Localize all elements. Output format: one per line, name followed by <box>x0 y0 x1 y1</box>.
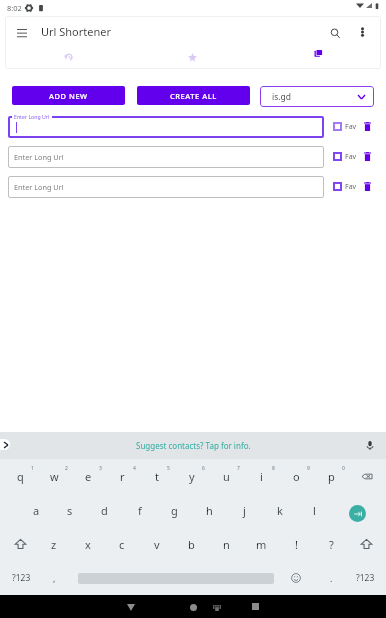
staticText: ! <box>295 537 298 552</box>
button[interactable]: Copy <box>301 42 335 65</box>
staticText: x <box>85 537 91 552</box>
staticText: z <box>51 537 57 552</box>
staticText: Fav <box>345 182 357 192</box>
button[interactable]: n <box>209 527 244 561</box>
button[interactable]: Search <box>323 21 347 45</box>
staticText: Enter Long Url <box>14 152 64 162</box>
button[interactable]: b <box>174 527 209 561</box>
staticText: ?123 <box>12 572 31 584</box>
button[interactable]: f <box>122 493 157 527</box>
button[interactable]: z <box>37 527 71 561</box>
button[interactable]: Favourite <box>333 122 342 131</box>
staticText: v <box>154 537 160 552</box>
staticText: p <box>328 469 335 484</box>
staticText: 4 <box>133 465 136 472</box>
button[interactable]: g <box>157 493 192 527</box>
button[interactable]: Delete <box>360 179 374 193</box>
staticText: Url Shortener <box>41 24 112 39</box>
button[interactable]: Home <box>175 595 211 618</box>
staticText: o <box>293 469 300 484</box>
button[interactable]: is.gd <box>260 86 374 107</box>
button[interactable]: k <box>262 493 297 527</box>
button[interactable]: Emoji <box>282 561 310 595</box>
button[interactable]: Backspace <box>349 459 384 493</box>
staticText: g <box>171 503 178 518</box>
staticText: 9 <box>307 465 310 472</box>
button[interactable]: q <box>3 459 37 493</box>
staticText: e <box>85 469 92 484</box>
button[interactable]: Recent apps <box>237 595 273 618</box>
button[interactable]: t <box>139 459 174 493</box>
staticText: l <box>313 503 316 518</box>
button[interactable]: Space <box>70 561 282 595</box>
button[interactable]: Delete <box>360 119 374 133</box>
staticText: CREATE ALL <box>170 91 217 101</box>
staticText: 0 <box>342 465 345 472</box>
button[interactable]: h <box>192 493 227 527</box>
button[interactable]: Period <box>317 561 345 595</box>
button[interactable]: Enter Long Url <box>8 176 324 198</box>
staticText: 1 <box>31 465 34 472</box>
button[interactable]: e <box>71 459 105 493</box>
button[interactable]: CREATE ALL <box>137 86 250 105</box>
button[interactable]: r <box>105 459 139 493</box>
button[interactable]: Comma <box>40 561 68 595</box>
button[interactable]: Enter Long Url <box>8 146 324 168</box>
button[interactable]: Navigation menu <box>9 20 35 46</box>
button[interactable] <box>8 116 324 138</box>
button[interactable]: Back <box>111 595 151 618</box>
button[interactable]: ! <box>279 527 314 561</box>
staticText: . <box>330 572 333 584</box>
button[interactable]: Symbols <box>346 561 384 595</box>
staticText: i <box>260 469 263 484</box>
button[interactable]: Shift <box>349 527 384 561</box>
staticText: s <box>67 503 73 518</box>
button[interactable]: a <box>19 493 53 527</box>
button[interactable]: Symbols <box>2 561 40 595</box>
button[interactable]: Keyboard indicator <box>205 595 229 618</box>
staticText: n <box>223 537 230 552</box>
staticText: j <box>243 503 246 518</box>
button[interactable]: m <box>244 527 279 561</box>
button[interactable]: ? <box>314 527 349 561</box>
button[interactable]: v <box>139 527 174 561</box>
staticText: 2 <box>65 465 68 472</box>
button[interactable]: Favorites <box>175 46 209 69</box>
button[interactable]: Favourite <box>333 152 342 161</box>
button[interactable]: p <box>314 459 349 493</box>
staticText: ADD NEW <box>49 91 88 101</box>
staticText: is.gd <box>272 91 291 103</box>
button[interactable]: w <box>37 459 71 493</box>
staticText: a <box>33 503 40 518</box>
staticText: 6 <box>202 465 205 472</box>
staticText: Suggest contacts? Tap for info. <box>136 440 251 451</box>
staticText: k <box>277 503 283 518</box>
button[interactable]: d <box>87 493 122 527</box>
button[interactable]: y <box>174 459 209 493</box>
button[interactable]: History <box>51 46 85 69</box>
button[interactable]: ADD NEW <box>12 86 125 105</box>
staticText: Fav <box>345 122 357 132</box>
button[interactable]: Shift <box>3 527 37 561</box>
staticText: Enter Long Url <box>14 182 64 192</box>
button[interactable]: s <box>53 493 87 527</box>
button[interactable]: x <box>71 527 105 561</box>
staticText: , <box>53 572 56 584</box>
button[interactable]: Expand toolbar <box>0 439 10 450</box>
staticText: ? <box>329 537 334 552</box>
staticText: y <box>189 469 195 484</box>
button[interactable]: Favourite <box>333 182 342 191</box>
button[interactable]: More options <box>351 21 373 43</box>
button[interactable]: Enter <box>340 493 374 527</box>
staticText: f <box>138 503 142 518</box>
button[interactable]: i <box>244 459 279 493</box>
button[interactable]: l <box>297 493 332 527</box>
button[interactable]: Voice input <box>363 438 377 452</box>
staticText: Fav <box>345 152 357 162</box>
staticText: m <box>256 537 267 552</box>
button[interactable]: j <box>227 493 262 527</box>
button[interactable]: c <box>105 527 139 561</box>
button[interactable]: u <box>209 459 244 493</box>
button[interactable]: Delete <box>360 149 374 163</box>
button[interactable]: o <box>279 459 314 493</box>
